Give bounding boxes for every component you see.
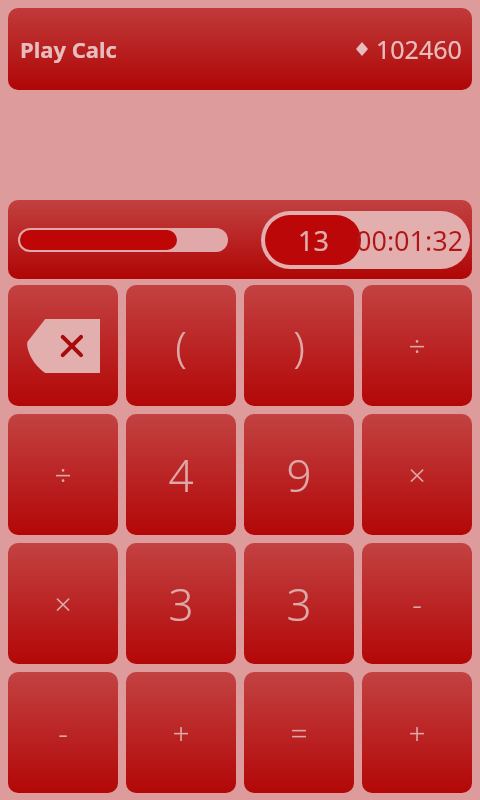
button[interactable]: (	[126, 285, 236, 406]
button[interactable]: 9	[244, 414, 354, 535]
staticText: 3	[168, 574, 194, 634]
staticText: Play Calc	[20, 34, 117, 64]
staticText: )	[293, 317, 305, 374]
button[interactable]: ×	[8, 543, 118, 664]
button[interactable]: Backspace	[8, 285, 118, 406]
button[interactable]: 4	[126, 414, 236, 535]
button[interactable]: 3	[244, 543, 354, 664]
staticText: 3	[286, 574, 312, 634]
button[interactable]: -	[8, 672, 118, 793]
staticText: ×	[54, 583, 72, 624]
button[interactable]: 3	[126, 543, 236, 664]
staticText: -	[58, 712, 68, 753]
button[interactable]: =	[244, 672, 354, 793]
staticText: +	[172, 712, 190, 753]
staticText: ×	[408, 454, 426, 495]
staticText: ÷	[54, 454, 72, 495]
button[interactable]: Progress	[18, 228, 228, 252]
button[interactable]: Play Calc	[8, 8, 472, 90]
staticText: (	[175, 317, 187, 374]
staticText: 00:01:32	[356, 222, 464, 259]
staticText: 102460	[376, 32, 462, 66]
button[interactable]: )	[244, 285, 354, 406]
button[interactable]: ÷	[8, 414, 118, 535]
button[interactable]: -	[362, 543, 472, 664]
button[interactable]: +	[362, 672, 472, 793]
staticText: -	[412, 583, 422, 624]
staticText: +	[408, 712, 426, 753]
staticText: 4	[168, 445, 194, 505]
button[interactable]: 13	[261, 211, 470, 269]
staticText: 13	[298, 222, 329, 259]
staticText: 9	[286, 445, 312, 505]
button[interactable]: ÷	[362, 285, 472, 406]
button[interactable]: +	[126, 672, 236, 793]
staticText: =	[290, 712, 308, 753]
staticText: ÷	[408, 325, 426, 366]
button[interactable]: ×	[362, 414, 472, 535]
